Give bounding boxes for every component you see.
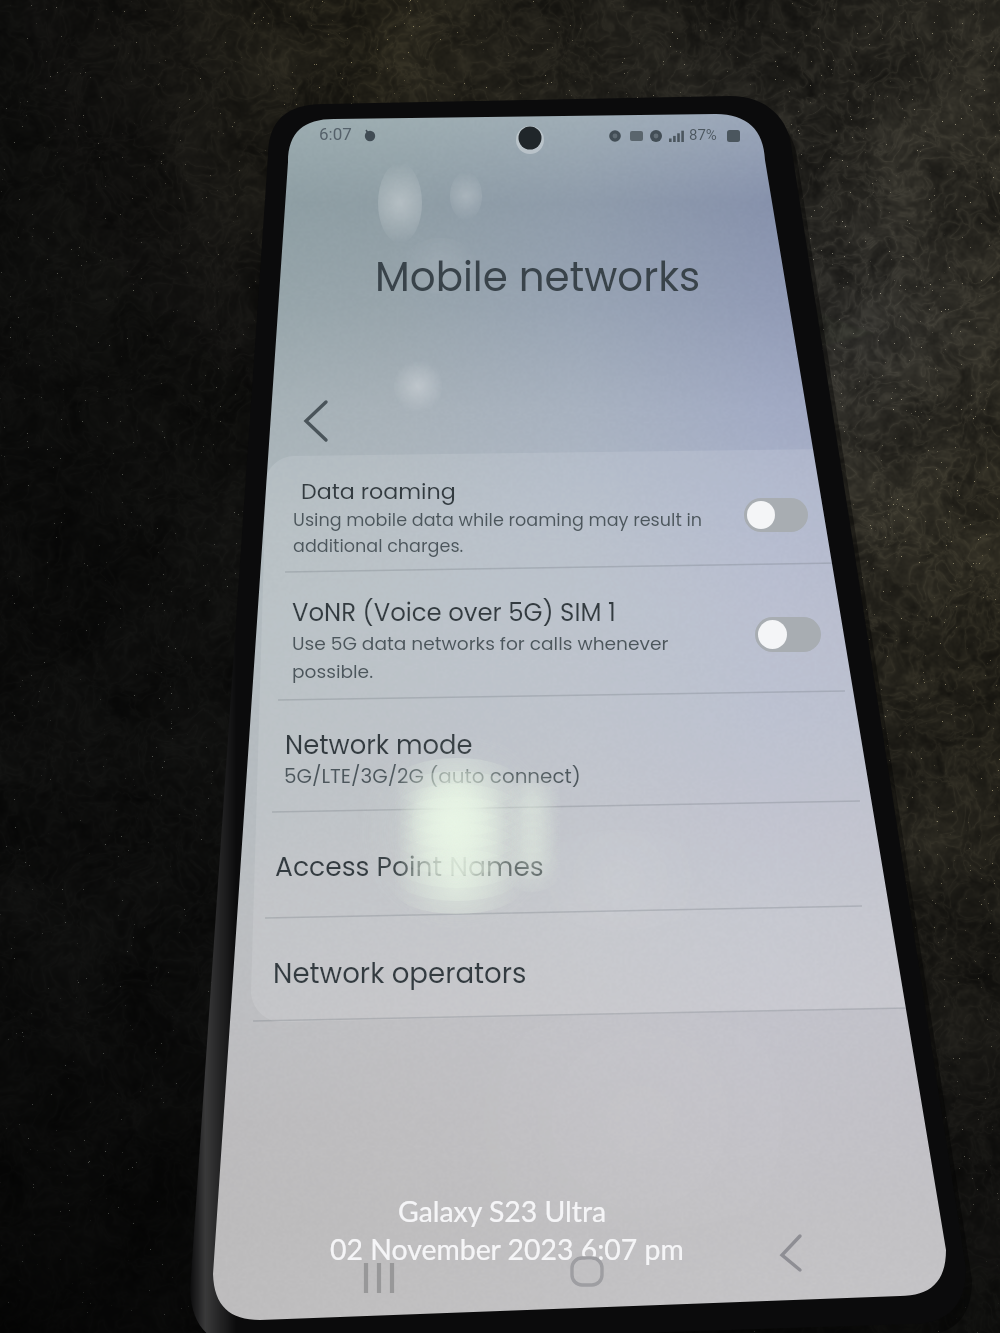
button[interactable]: Use 5G data networks for calls whenever bbox=[292, 630, 669, 656]
button[interactable]: Data roaming bbox=[301, 476, 456, 507]
button[interactable]: VoNR Voice over 5G SIM 1 switch, off bbox=[755, 617, 821, 652]
button[interactable]: Recent apps bbox=[355, 1255, 407, 1303]
button[interactable]: Network mode bbox=[285, 727, 473, 763]
button[interactable]: Network operators bbox=[273, 954, 527, 993]
button[interactable]: Back bbox=[768, 1228, 822, 1282]
button[interactable]: 5G/LTE/3G/2G (auto connect) bbox=[284, 762, 581, 790]
staticText: Galaxy S23 Ultra bbox=[398, 1194, 607, 1228]
staticText: Mobile networks bbox=[375, 249, 701, 306]
staticText: 02 November 2023 6:07 pm bbox=[330, 1232, 684, 1266]
button[interactable]: Access Point Names bbox=[275, 848, 544, 885]
staticText: 6:07 bbox=[319, 124, 352, 144]
button[interactable]: VoNR (Voice over 5G) SIM 1 bbox=[292, 595, 616, 629]
button[interactable]: Home bbox=[560, 1250, 614, 1298]
staticText: 87% bbox=[689, 126, 717, 144]
button[interactable]: additional charges. bbox=[293, 534, 464, 559]
button[interactable]: Using mobile data while roaming may resu… bbox=[293, 508, 703, 533]
button[interactable]: Data roaming switch, off bbox=[744, 498, 808, 532]
button[interactable]: Navigate up bbox=[288, 386, 350, 448]
button[interactable]: possible. bbox=[292, 658, 374, 684]
